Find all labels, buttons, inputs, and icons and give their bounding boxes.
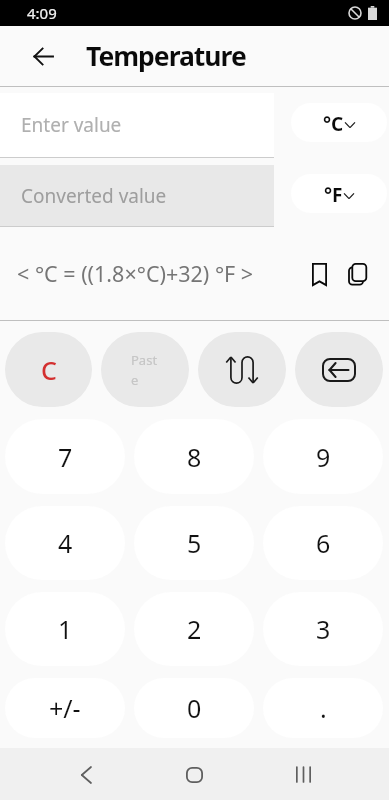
button[interactable]: C <box>5 332 92 407</box>
staticText: °F <box>324 182 343 208</box>
button[interactable]: Home <box>177 757 212 792</box>
button[interactable]: Recent apps <box>286 757 321 792</box>
button[interactable]: Copy <box>340 257 374 291</box>
staticText: 6 <box>316 526 331 560</box>
staticText: 9 <box>316 440 331 474</box>
button[interactable]: 9 <box>263 419 383 494</box>
staticText: Enter value <box>21 112 122 138</box>
button[interactable]: 3 <box>263 592 383 666</box>
button[interactable]: Paste <box>101 332 189 407</box>
other: Backspace <box>322 358 356 382</box>
staticText: 5 <box>187 526 202 560</box>
staticText: +/- <box>49 691 81 725</box>
staticText: Converted value <box>21 183 167 209</box>
button[interactable]: Back <box>68 757 103 792</box>
staticText: < °C = ((1.8×°C)+32) °F > <box>17 259 254 288</box>
button[interactable]: 7 <box>5 419 125 494</box>
staticText: 7 <box>58 440 73 474</box>
staticText: C <box>41 353 57 387</box>
staticText: 3 <box>316 612 331 646</box>
staticText: °C <box>323 111 344 137</box>
staticText: . <box>320 691 327 725</box>
button[interactable]: 2 <box>134 592 254 666</box>
button[interactable]: 8 <box>134 419 254 494</box>
button[interactable]: +/- <box>5 678 125 738</box>
staticText: 4 <box>58 526 73 560</box>
button[interactable]: Backspace <box>295 332 383 407</box>
staticText: 2 <box>187 612 202 646</box>
button[interactable]: 4 <box>5 506 125 580</box>
staticText: 4:09 <box>27 3 57 23</box>
button[interactable]: Converted value <box>0 165 274 226</box>
other: Swap units <box>227 357 257 383</box>
button[interactable]: Bookmark <box>302 257 336 291</box>
staticText: 0 <box>187 691 202 725</box>
staticText: Temperature <box>86 38 246 74</box>
button[interactable]: Back <box>22 35 64 77</box>
button[interactable]: . <box>263 678 383 738</box>
staticText: 8 <box>187 440 202 474</box>
button[interactable]: 1 <box>5 592 125 666</box>
button[interactable]: Swap units <box>198 332 286 407</box>
button[interactable]: °C <box>291 103 387 142</box>
button[interactable]: °F <box>291 174 387 213</box>
button[interactable]: 6 <box>263 506 383 580</box>
staticText: 1 <box>58 612 73 646</box>
button[interactable]: Enter value <box>0 93 274 157</box>
staticText: Paste <box>131 351 160 389</box>
button[interactable]: 5 <box>134 506 254 580</box>
button[interactable]: 0 <box>134 678 254 738</box>
